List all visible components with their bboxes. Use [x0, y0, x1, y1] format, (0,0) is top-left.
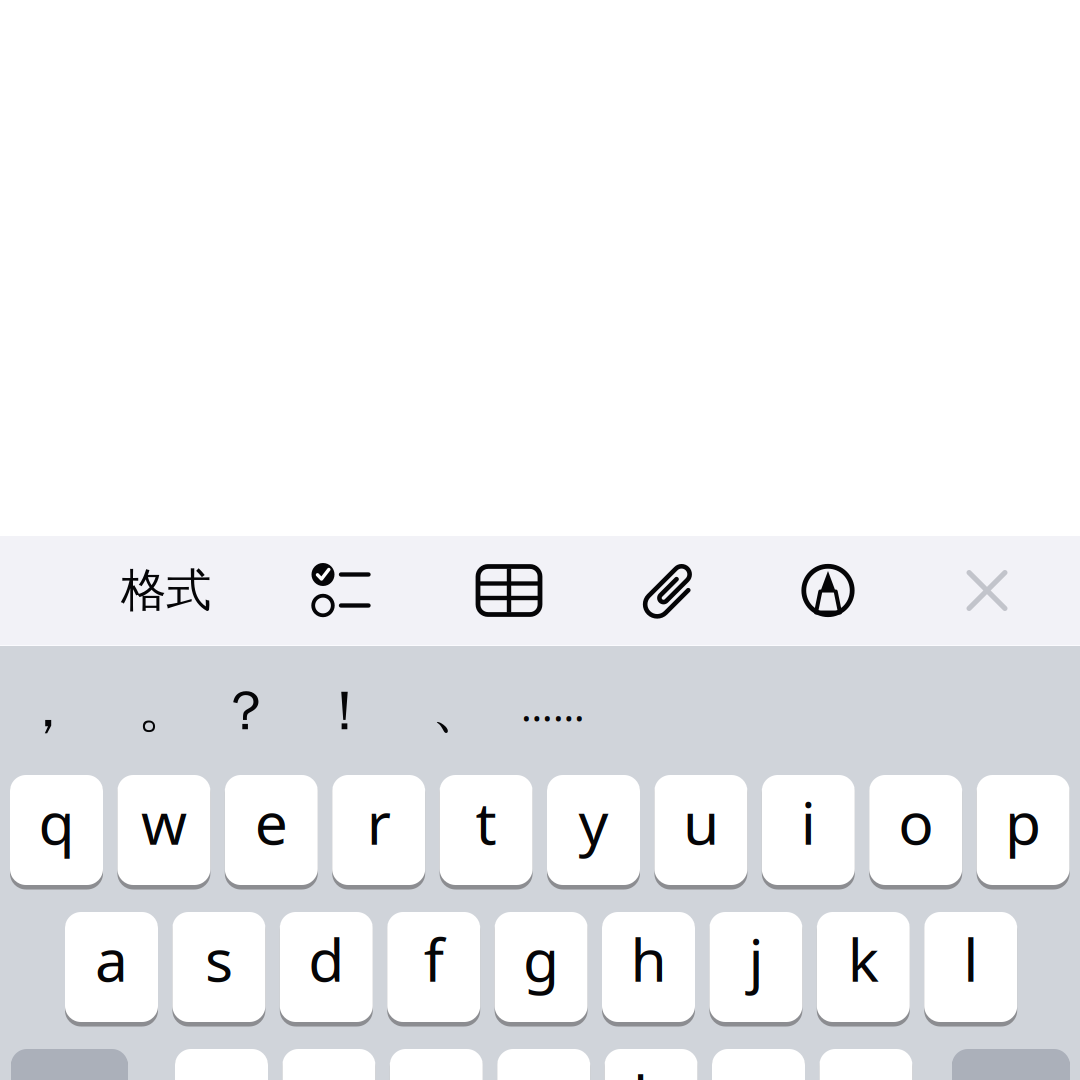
staticText: l — [963, 920, 978, 998]
button[interactable]: ！ — [275, 657, 415, 765]
button[interactable]: p — [977, 775, 1070, 888]
staticText: s — [205, 920, 233, 998]
staticText: …… — [521, 679, 585, 732]
button[interactable]: 格式 — [91, 536, 241, 645]
button[interactable]: Dismiss keyboard — [927, 536, 1047, 645]
button[interactable]: m — [819, 1049, 912, 1080]
button[interactable]: k — [817, 912, 910, 1025]
button[interactable]: u — [654, 775, 747, 888]
staticText: o — [898, 783, 933, 861]
button[interactable]: o — [869, 775, 962, 888]
button[interactable] — [952, 1049, 1070, 1080]
staticText: ， — [20, 674, 75, 741]
staticText: y — [578, 783, 608, 861]
button[interactable]: d — [280, 912, 373, 1025]
button[interactable]: …… — [483, 652, 623, 760]
staticText: 格式 — [121, 563, 211, 618]
button[interactable]: j — [709, 912, 802, 1025]
staticText: r — [367, 783, 391, 861]
staticText: t — [476, 783, 497, 861]
staticText: k — [848, 920, 879, 998]
button[interactable]: Markup — [768, 536, 888, 645]
button[interactable]: 、 — [389, 654, 529, 762]
staticText: 。 — [137, 674, 192, 741]
button[interactable]: x — [282, 1049, 375, 1080]
staticText: a — [95, 920, 128, 998]
staticText: h — [630, 920, 666, 998]
staticText: ？ — [218, 677, 273, 744]
button[interactable]: Checklist — [281, 536, 401, 645]
button[interactable]: e — [225, 775, 318, 888]
staticText: b — [633, 1057, 669, 1080]
button[interactable]: a — [65, 912, 158, 1025]
button[interactable]: f — [387, 912, 480, 1025]
button[interactable]: l — [924, 912, 1017, 1025]
staticText: p — [1005, 783, 1041, 861]
button[interactable]: c — [390, 1049, 483, 1080]
staticText: ！ — [317, 677, 372, 744]
staticText: g — [523, 920, 559, 998]
button[interactable]: r — [332, 775, 425, 888]
button[interactable]: i — [762, 775, 855, 888]
staticText: u — [683, 783, 719, 861]
button[interactable]: t — [440, 775, 533, 888]
staticText: 、 — [431, 674, 486, 741]
button[interactable]: v — [497, 1049, 590, 1080]
staticText: w — [141, 783, 187, 861]
button[interactable] — [11, 1049, 128, 1080]
staticText: d — [308, 920, 344, 998]
staticText: j — [748, 920, 763, 998]
button[interactable]: z — [175, 1049, 268, 1080]
button[interactable]: h — [602, 912, 695, 1025]
button[interactable]: Table — [449, 536, 569, 645]
button[interactable]: ？ — [176, 657, 316, 765]
button[interactable]: y — [547, 775, 640, 888]
staticText: f — [424, 920, 444, 998]
button[interactable]: q — [10, 775, 103, 888]
button[interactable]: s — [172, 912, 265, 1025]
button[interactable]: b — [605, 1049, 698, 1080]
button[interactable]: n — [712, 1049, 805, 1080]
staticText: i — [801, 783, 816, 861]
staticText: e — [255, 783, 288, 861]
button[interactable]: ， — [0, 654, 118, 762]
staticText: q — [38, 783, 74, 861]
button[interactable]: g — [495, 912, 588, 1025]
button[interactable]: w — [117, 775, 210, 888]
button[interactable]: Attach file — [610, 536, 730, 645]
button[interactable]: 。 — [95, 654, 235, 762]
